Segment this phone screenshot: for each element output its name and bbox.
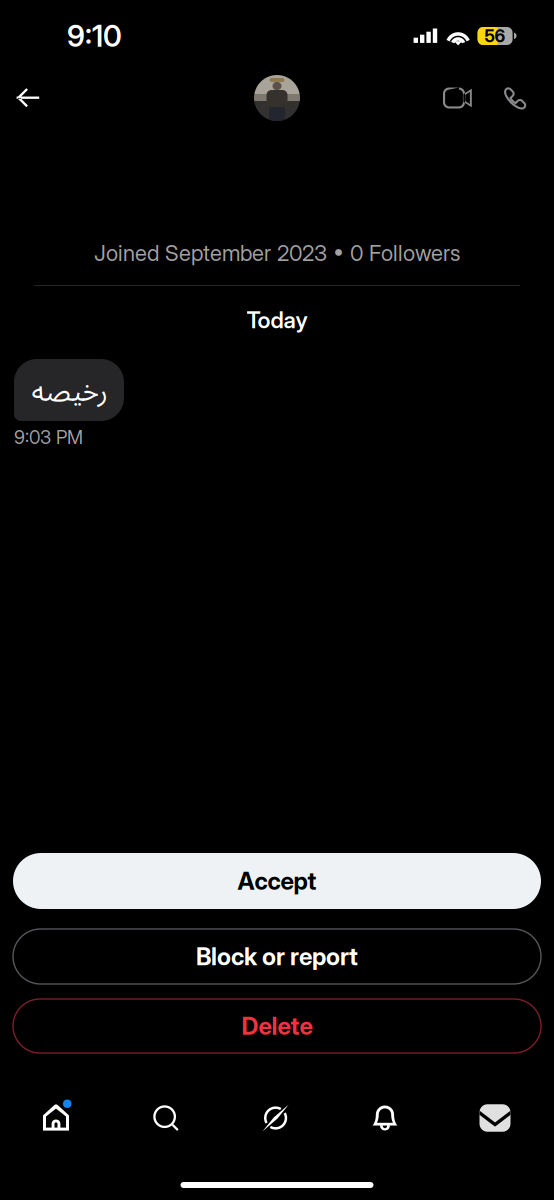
button[interactable]: Explore [240,1092,310,1144]
staticText: 9:10 [67,18,122,54]
staticText: Block or report [196,942,358,971]
button[interactable]: Audio call [493,72,537,124]
staticText: Joined September 2023 • 0 Followers [94,240,460,266]
button[interactable]: Block or report [13,929,541,984]
button[interactable]: Home [21,1092,91,1144]
staticText: 9:03 PM [14,426,83,449]
staticText: Today [246,306,307,334]
button[interactable]: Delete [13,999,541,1053]
staticText: Accept [237,866,316,895]
button[interactable]: Notifications [350,1092,420,1144]
staticText: 56 [485,25,506,46]
button[interactable]: Back [0,72,56,124]
staticText: رخيصه [31,371,107,409]
button[interactable]: Messages [460,1092,530,1144]
staticText: Delete [241,1011,312,1040]
button[interactable]: Video call [434,72,481,124]
button[interactable]: Profile photo [254,75,300,121]
button[interactable]: Search [131,1092,201,1144]
button[interactable]: Accept [13,853,541,909]
